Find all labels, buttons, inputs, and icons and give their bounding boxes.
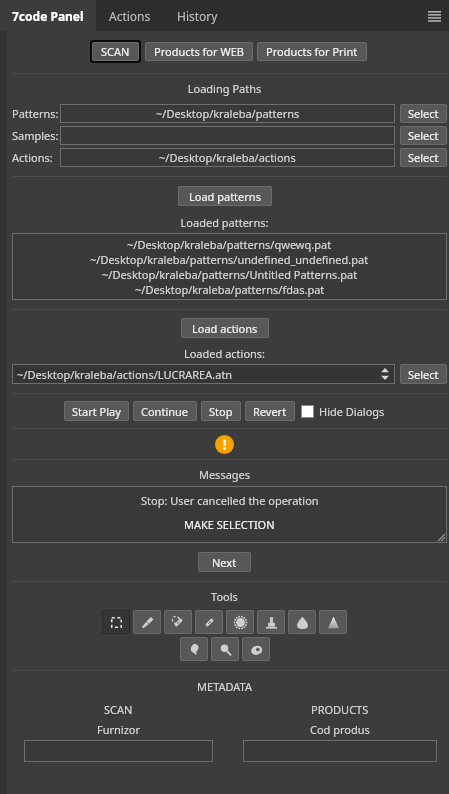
staticText: SCAN	[101, 44, 130, 59]
staticText: ~/Desktop/kraleba/patterns	[156, 106, 300, 121]
button[interactable]: Stop	[201, 401, 241, 421]
staticText: SCAN	[104, 702, 133, 717]
button[interactable]: Healing Brush	[195, 610, 223, 634]
staticText: ~/Desktop/kraleba/actions/LUCRAREA.atn	[17, 367, 233, 382]
staticText: 7code Panel	[12, 8, 84, 24]
staticText: Continue	[141, 404, 189, 419]
button[interactable]: Start Play	[64, 401, 129, 421]
staticText: ~/Desktop/kraleba/patterns/qwewq.pat	[127, 237, 332, 252]
staticText: Furnizor	[97, 722, 141, 737]
staticText: Cod produs	[310, 722, 370, 737]
staticText: MAKE SELECTION	[184, 517, 275, 532]
staticText: Select	[408, 150, 439, 165]
staticText: ~/Desktop/kraleba/patterns/Untitled Patt…	[102, 267, 358, 282]
staticText: Stop: User cancelled the operation	[141, 493, 319, 508]
button[interactable]: Actions	[96, 0, 164, 31]
staticText: Select	[408, 367, 439, 382]
button[interactable]: Load patterns	[178, 186, 272, 206]
staticText: Tools	[7, 589, 442, 604]
staticText: Messages	[7, 467, 442, 482]
button[interactable]	[60, 126, 395, 145]
button[interactable]: Revert	[245, 401, 295, 421]
staticText: Actions:	[12, 150, 53, 165]
staticText: Products for Print	[266, 44, 358, 59]
staticText: Hide Dialogs	[319, 404, 385, 419]
button[interactable]: Sharpen	[319, 610, 347, 634]
staticText: Select	[408, 106, 439, 121]
button[interactable]: Hide Dialogs	[301, 404, 385, 419]
button[interactable]: Select	[400, 364, 447, 384]
button[interactable]: Clone Stamp	[257, 610, 285, 634]
button[interactable]	[243, 740, 437, 762]
staticText: Loaded actions:	[7, 346, 442, 361]
staticText: ~/Desktop/kraleba/patterns/fdas.pat	[135, 282, 325, 297]
button[interactable]: Rectangular Marquee	[102, 610, 130, 634]
staticText: Samples:	[12, 128, 59, 143]
button[interactable]: Select	[400, 126, 447, 145]
button[interactable]: ~/Desktop/kraleba/actions	[60, 148, 395, 167]
staticText: Revert	[253, 404, 287, 419]
button[interactable]: Menu	[419, 1, 449, 31]
staticText: Stop	[209, 404, 233, 419]
button[interactable]: Products for WEB	[145, 42, 253, 61]
button[interactable]: Smudge	[180, 637, 208, 661]
staticText: Start Play	[72, 404, 121, 419]
button[interactable]: History	[164, 0, 231, 31]
staticText: METADATA	[7, 679, 442, 694]
staticText: Load actions	[192, 321, 258, 336]
staticText: Actions	[109, 8, 151, 24]
staticText: History	[177, 8, 218, 24]
button[interactable]: Spot Healing Brush	[164, 610, 192, 634]
staticText: Next	[212, 555, 237, 570]
staticText: ~/Desktop/kraleba/actions	[159, 150, 296, 165]
button[interactable]: ~/Desktop/kraleba/patterns	[60, 104, 395, 123]
button[interactable]: Zoom	[211, 637, 239, 661]
staticText: PRODUCTS	[311, 702, 369, 717]
button[interactable]: Select	[400, 148, 447, 167]
button[interactable]: Patch	[226, 610, 254, 634]
button[interactable]: 7code Panel	[0, 0, 96, 31]
button[interactable]: Products for Print	[257, 42, 367, 61]
button[interactable]: Stop: User cancelled the operation	[12, 486, 447, 543]
button[interactable]: Blur	[288, 610, 316, 634]
button[interactable]: Eyedropper	[133, 610, 161, 634]
button[interactable]: Select	[400, 104, 447, 123]
button[interactable]	[24, 740, 213, 762]
button[interactable]: ~/Desktop/kraleba/patterns/qwewq.pat	[12, 233, 447, 300]
staticText: Products for WEB	[154, 44, 244, 59]
button[interactable]: Next	[198, 552, 251, 572]
staticText: Loading Paths	[7, 81, 442, 96]
staticText: Patterns:	[12, 106, 59, 121]
button[interactable]: Load actions	[181, 318, 269, 338]
button[interactable]: ~/Desktop/kraleba/actions/LUCRAREA.atn	[12, 364, 395, 384]
staticText: Loaded patterns:	[7, 215, 442, 230]
button[interactable]: SCAN	[92, 42, 139, 61]
staticText: Load patterns	[189, 189, 261, 204]
staticText: Select	[408, 128, 439, 143]
button[interactable]: Continue	[133, 401, 197, 421]
staticText: ~/Desktop/kraleba/patterns/undefined_und…	[90, 252, 369, 267]
button[interactable]: Dodge	[242, 637, 270, 661]
